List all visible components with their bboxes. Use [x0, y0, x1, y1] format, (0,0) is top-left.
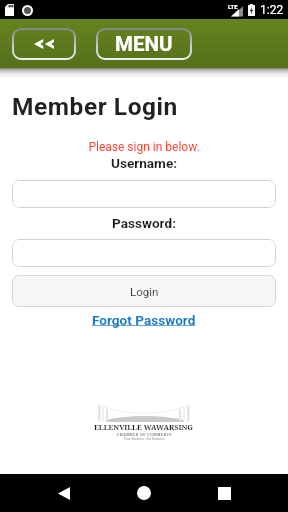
staticText: Your Business Our Business: [124, 437, 165, 441]
staticText: Login: [130, 285, 159, 298]
button[interactable]: [12, 239, 276, 267]
staticText: Username:: [0, 155, 288, 171]
button[interactable]: Back: [12, 28, 76, 60]
staticText: LTE: [228, 3, 238, 10]
button[interactable]: [12, 180, 276, 208]
button[interactable]: Login: [12, 275, 276, 307]
button[interactable]: MENU: [96, 28, 192, 60]
staticText: Member Login: [12, 92, 178, 121]
staticText: 1:22: [260, 3, 284, 17]
staticText: MENU: [115, 32, 173, 56]
staticText: CHAMBER OF COMMERCE: [117, 432, 172, 437]
staticText: ELLENVILLE WAWARSING: [94, 422, 194, 432]
button[interactable]: Recent apps: [202, 474, 246, 512]
staticText: Password:: [0, 215, 288, 231]
button[interactable]: Forgot Password: [92, 312, 196, 328]
button[interactable]: Home: [122, 474, 166, 512]
button[interactable]: Back: [42, 474, 86, 512]
staticText: Please sign in below.: [0, 140, 288, 154]
